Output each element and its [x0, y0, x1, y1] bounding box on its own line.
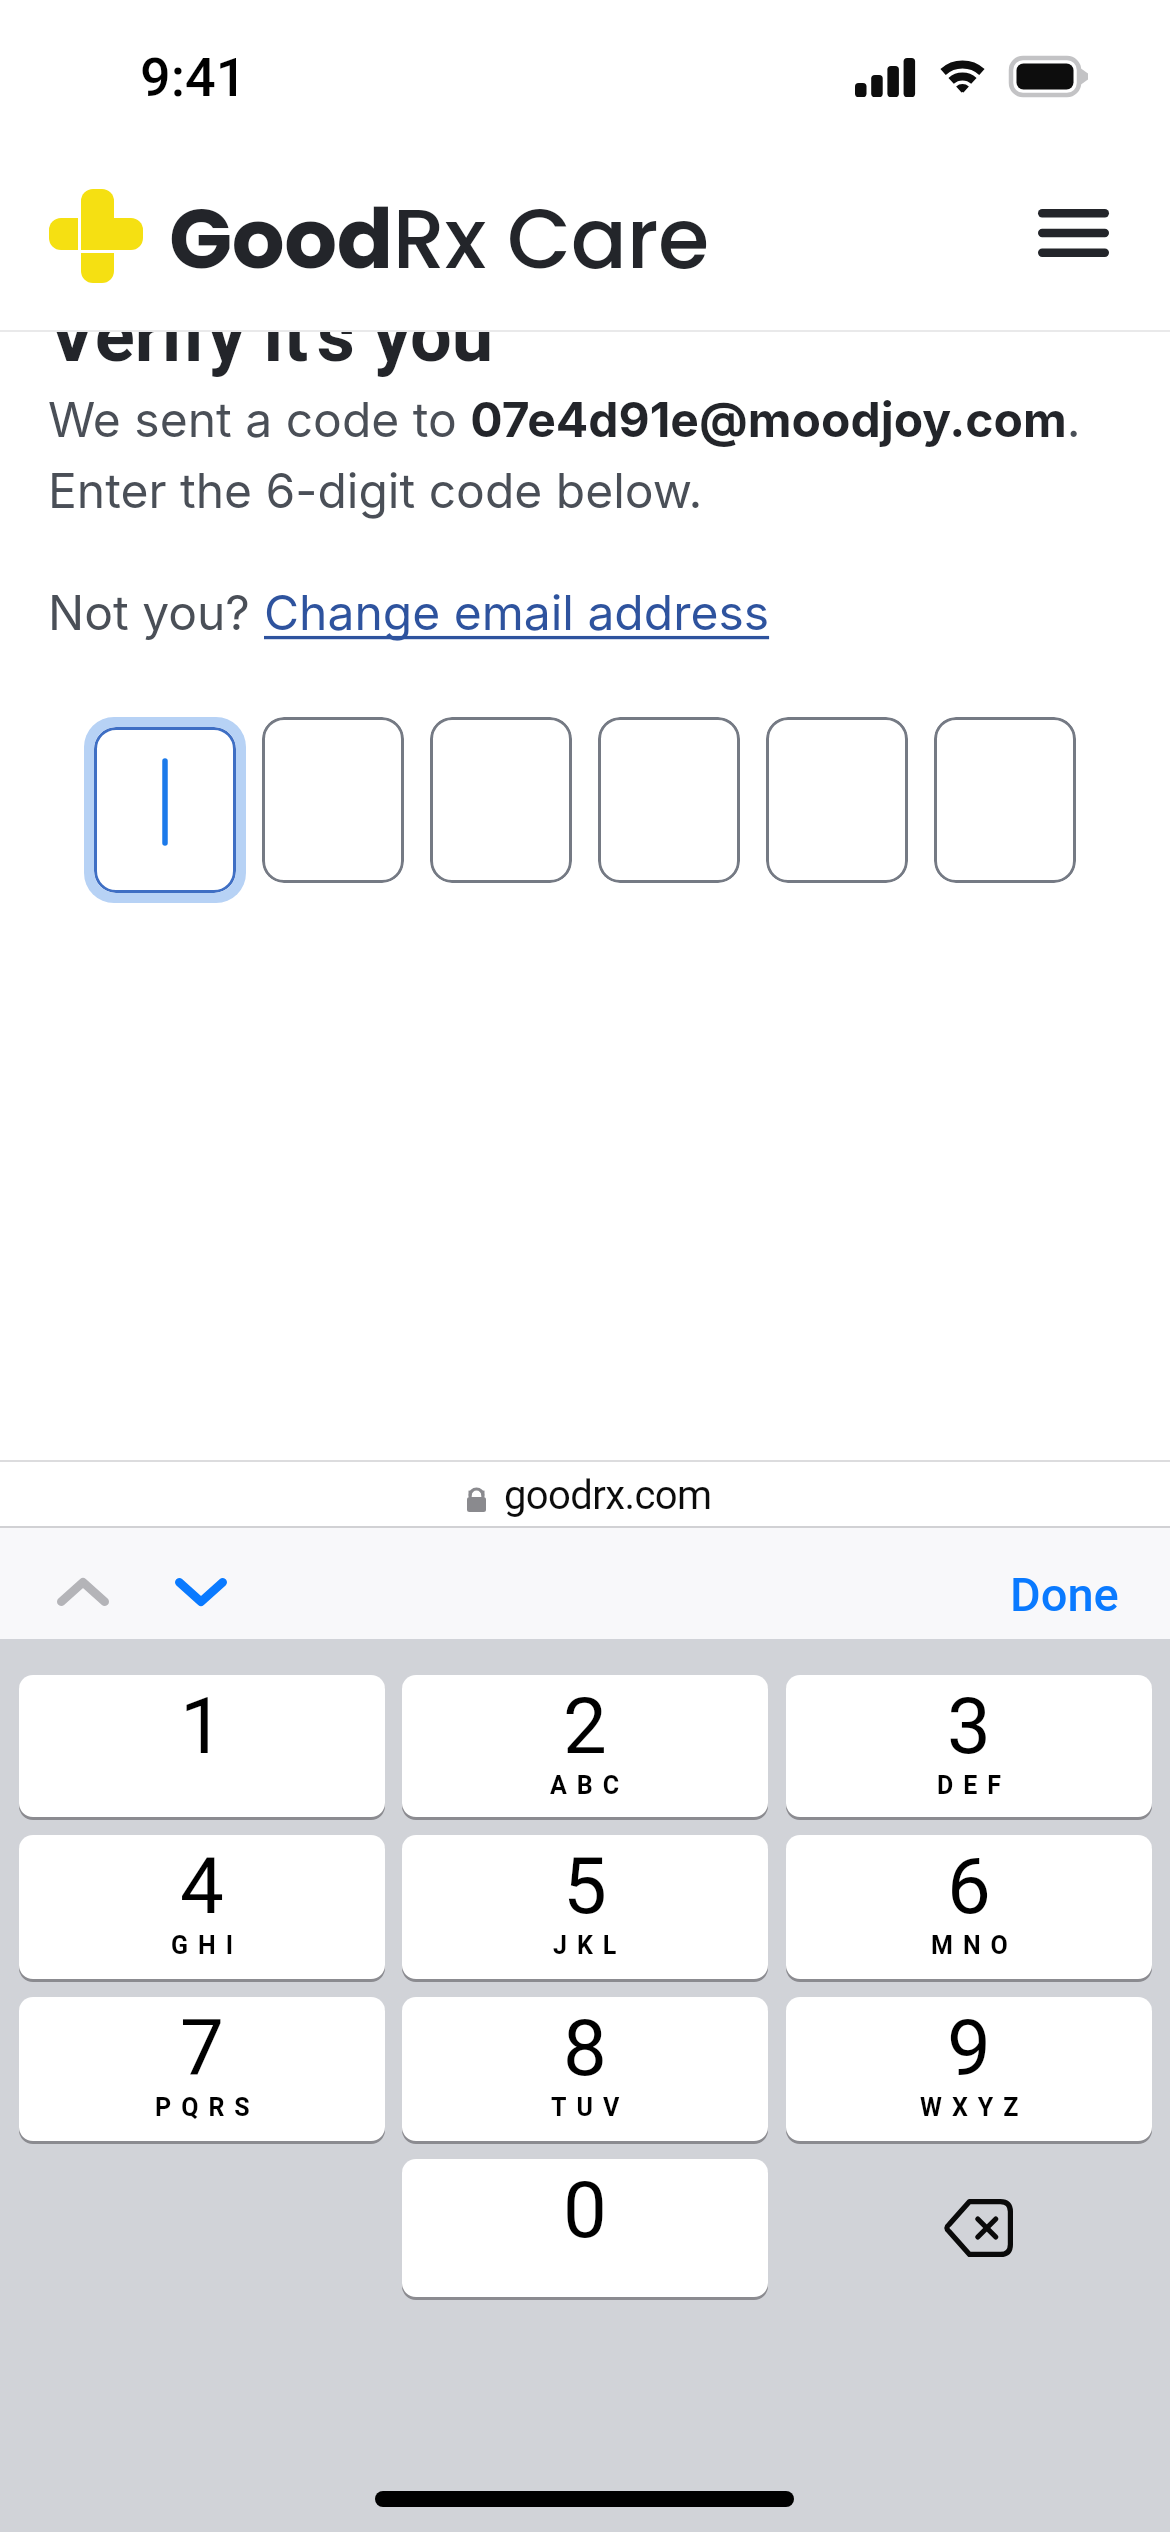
staticText: Change email address: [264, 583, 770, 641]
staticText: 9:41: [140, 46, 247, 109]
staticText: JKL: [553, 1931, 627, 1960]
staticText: GHI: [171, 1931, 244, 1960]
button[interactable]: 7: [19, 1997, 385, 2141]
staticText: Done: [1010, 1567, 1119, 1618]
button[interactable]: 0: [402, 2159, 768, 2297]
staticText: 9: [947, 2003, 991, 2094]
button[interactable]: Previous field: [30, 1548, 136, 1636]
staticText: We sent a code to 07e4d91e@moodjoy.com. …: [48, 390, 1081, 519]
button[interactable]: Change email address: [264, 583, 770, 641]
staticText: Verify it's you: [48, 292, 494, 379]
staticText: PQRS: [155, 2093, 260, 2122]
button[interactable]: 9: [786, 1997, 1152, 2141]
button[interactable]: Delete: [786, 2159, 1152, 2297]
button[interactable]: Code digit 1: [84, 717, 246, 903]
button[interactable]: Done: [962, 1537, 1167, 1648]
staticText: GoodRx Care: [169, 181, 709, 297]
button[interactable]: Code digit 5: [766, 717, 908, 883]
button[interactable]: Next field: [148, 1548, 254, 1636]
staticText: 2: [563, 1681, 607, 1772]
staticText: 0: [563, 2165, 607, 2256]
staticText: DEF: [937, 1771, 1012, 1800]
button[interactable]: Code digit 3: [430, 717, 572, 883]
staticText: TUV: [551, 2093, 630, 2122]
button[interactable]: 8: [402, 1997, 768, 2141]
staticText: WXYZ: [920, 2093, 1029, 2122]
button[interactable]: Code digit 2: [262, 717, 404, 883]
button[interactable]: 1: [19, 1675, 385, 1817]
button[interactable]: 3: [786, 1675, 1152, 1817]
button[interactable]: 2: [402, 1675, 768, 1817]
staticText: Not you?: [48, 583, 264, 641]
staticText: 6: [947, 1841, 991, 1932]
staticText: 7: [180, 2003, 224, 2094]
staticText: MNO: [931, 1931, 1018, 1960]
staticText: 5: [563, 1841, 607, 1932]
button[interactable]: Menu: [1012, 177, 1135, 289]
staticText: 8: [563, 2003, 607, 2094]
staticText: ABC: [550, 1771, 630, 1800]
button[interactable]: Code digit 6: [934, 717, 1076, 883]
staticText: 4: [180, 1841, 224, 1932]
button[interactable]: 5: [402, 1835, 768, 1979]
button[interactable]: 6: [786, 1835, 1152, 1979]
button[interactable]: Code digit 4: [598, 717, 740, 883]
staticText: goodrx.com: [504, 1472, 712, 1519]
staticText: 1: [180, 1681, 224, 1772]
staticText: 3: [947, 1681, 991, 1772]
button[interactable]: 4: [19, 1835, 385, 1979]
